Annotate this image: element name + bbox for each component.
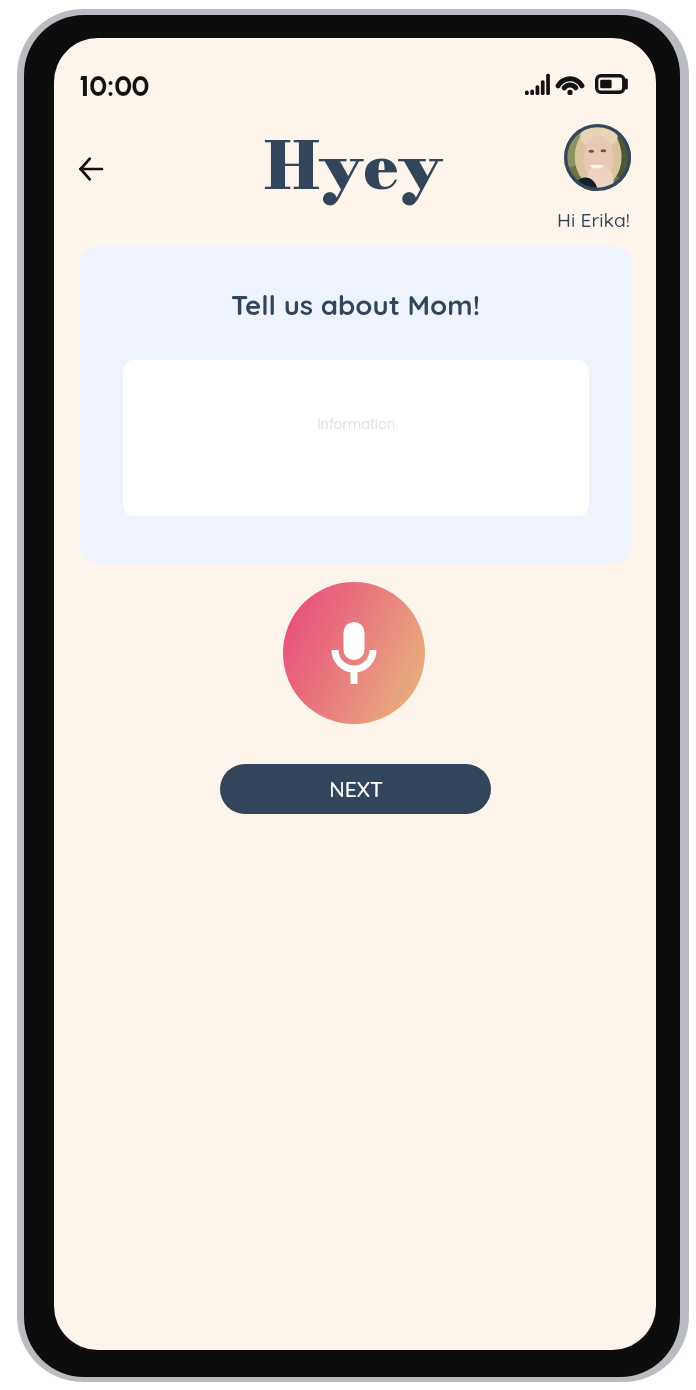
staticText: 10:00 — [79, 68, 150, 103]
staticText: Information — [123, 414, 589, 432]
staticText: Hi Erika! — [516, 208, 656, 232]
staticText: Hyey — [264, 115, 443, 215]
staticText: Tell us about Mom! — [79, 287, 632, 321]
staticText: NEXT — [329, 776, 383, 803]
button[interactable]: NEXT — [220, 764, 491, 814]
button[interactable]: Record voice — [283, 582, 425, 724]
button[interactable]: Profile photo — [564, 124, 631, 191]
button[interactable]: Back — [66, 144, 115, 193]
